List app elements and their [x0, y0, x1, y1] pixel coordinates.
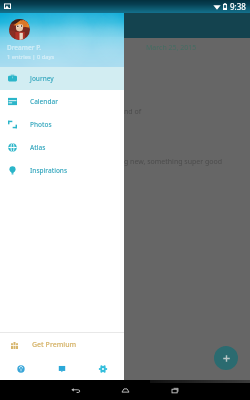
button[interactable]: Calendar [0, 90, 124, 113]
button[interactable]: Help [0, 357, 41, 380]
button[interactable]: Recents [150, 380, 200, 400]
staticText: g new, something super good [124, 157, 223, 167]
button[interactable]: Get Premium [0, 333, 124, 357]
staticText: Journey [30, 74, 54, 83]
button[interactable]: Inspirations [0, 159, 124, 182]
staticText: Inspirations [30, 166, 68, 175]
staticText: 1 entries | 0 days [7, 53, 55, 61]
staticText: Atlas [30, 143, 46, 152]
button[interactable]: Back [50, 380, 100, 400]
button[interactable]: Journey [0, 67, 124, 90]
button[interactable]: Add entry [214, 346, 238, 370]
staticText: 9:38 [230, 1, 246, 12]
staticText: Calendar [30, 97, 58, 106]
button[interactable]: Settings [82, 357, 124, 380]
button[interactable]: Atlas [0, 136, 124, 159]
button[interactable]: Home [100, 380, 150, 400]
staticText: Dreamer P. [7, 43, 42, 52]
staticText: Get Premium [32, 340, 77, 350]
button[interactable]: Notes [41, 357, 82, 380]
staticText: March 25, 2015 [146, 43, 197, 53]
button[interactable]: Photos [0, 113, 124, 136]
staticText: nd of [124, 107, 142, 117]
staticText: Photos [30, 120, 52, 129]
